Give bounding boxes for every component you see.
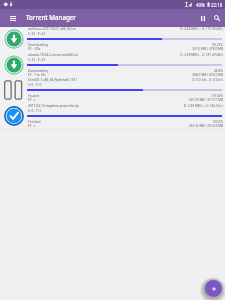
staticText: CentOS-7-x86_64-NetInstall-1611: [28, 78, 78, 82]
staticText: 59.54%: [0, 94, 223, 98]
staticText: 2017-04-10-raspbian-jessie-lite.zip: [28, 104, 79, 108]
staticText: S: 22 - P: 24: [28, 32, 46, 36]
staticText: 69.25%: [0, 43, 223, 47]
button[interactable]: ubuntu-16.04.2-server-amd64.iso: [0, 53, 225, 79]
staticText: Downloading: [28, 43, 48, 47]
staticText: D: 4.84 MB/s - U: 173.94 kB/s: [0, 27, 223, 31]
staticText: S: 0 - P: 0: [28, 109, 42, 113]
staticText: 22:18: [211, 2, 223, 8]
staticText: Downloading: [28, 69, 48, 73]
staticText: Finished: [28, 120, 41, 124]
staticText: ET: ~1m 26s: [28, 73, 46, 77]
button[interactable]: Pause all: [196, 11, 210, 25]
staticText: ET: ∞: [28, 98, 36, 102]
staticText: 40%: [196, 2, 205, 8]
staticText: ET: ∞: [28, 124, 36, 128]
button[interactable]: Search: [210, 11, 224, 25]
staticText: ubuntu-16.04.2-server-amd64.iso: [28, 53, 78, 57]
staticText: 46.8%: [0, 69, 223, 73]
button[interactable]: archlinux-2017.04.01-x86_64.iso: [0, 27, 225, 53]
staticText: 388.0 MB / 829.0 MB: [0, 73, 223, 77]
staticText: S: 23 - P: 23: [28, 58, 46, 62]
staticText: ET: ~30s: [28, 47, 41, 51]
staticText: D: 3.08 MB/s - U: 181.49 kB/s: [0, 53, 223, 57]
button[interactable]: Add torrent: [205, 280, 222, 297]
button[interactable]: CentOS-7-x86_64-NetInstall-1611: [0, 78, 225, 104]
staticText: Torrent Manager: [26, 13, 76, 21]
staticText: 293.32 MB / 293.32 MB: [0, 124, 223, 128]
staticText: 100.0%: [0, 120, 223, 124]
staticText: D: 2.89 MB/s - U: 144.0 b/s: [0, 104, 223, 108]
staticText: 225.99 MB / 377.01 MB: [0, 98, 223, 102]
staticText: S: 0 - P: 0: [28, 83, 42, 87]
staticText: D: 0.0 b/s - U: 0.0 b/s: [0, 78, 223, 82]
staticText: 331.0 MB / 478.0 MB: [0, 47, 223, 51]
staticText: Paused: [28, 94, 39, 98]
staticText: archlinux-2017.04.01-x86_64.iso: [28, 27, 76, 31]
button[interactable]: 2017-04-10-raspbian-jessie-lite.zip: [0, 104, 225, 130]
button[interactable]: Open navigation menu: [4, 9, 22, 27]
